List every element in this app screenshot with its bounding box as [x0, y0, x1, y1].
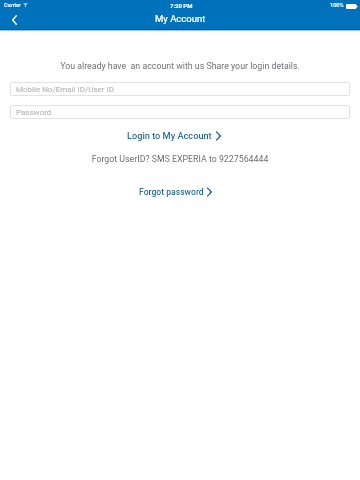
staticText: Carrier: [4, 2, 22, 9]
staticText: 7:20 PM: [170, 2, 193, 9]
staticText: My Account: [155, 13, 206, 24]
button[interactable]: Back: [5, 11, 23, 29]
button[interactable]: Forgot password: [0, 185, 355, 198]
staticText: Mobile No/Email ID/User ID: [16, 85, 114, 94]
button[interactable]: Mobile No/Email ID/User ID: [10, 82, 350, 96]
staticText: Password: [16, 108, 52, 117]
staticText: Forgot password: [139, 187, 204, 197]
staticText: Forgot UserID? SMS EXPERIA to 9227564444: [0, 154, 360, 164]
staticText: You already have an account with us Shar…: [0, 61, 360, 71]
staticText: Login to My Account: [127, 130, 212, 141]
button[interactable]: Login to My Account: [0, 129, 354, 142]
button[interactable]: Password: [10, 105, 350, 119]
staticText: 100%: [330, 2, 344, 9]
